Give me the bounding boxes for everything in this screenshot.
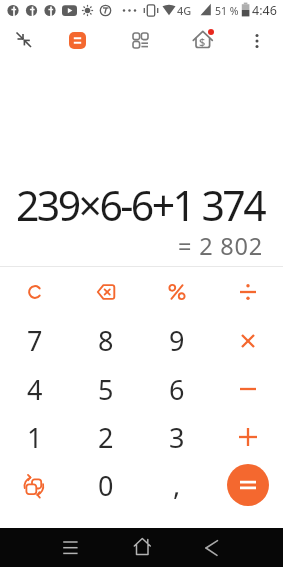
staticText: 6 <box>169 371 185 408</box>
staticText: 9 <box>169 322 185 359</box>
button[interactable] <box>0 267 70 316</box>
staticText: 51 % <box>215 4 239 18</box>
staticText: 2 <box>98 419 114 456</box>
button[interactable]: 5 <box>70 365 141 413</box>
button[interactable] <box>0 461 70 509</box>
button[interactable] <box>212 461 283 509</box>
button[interactable] <box>69 32 86 49</box>
staticText: 3 <box>169 419 185 456</box>
staticText: 1 <box>27 419 43 456</box>
button[interactable] <box>227 464 269 506</box>
staticText: 4:46 <box>252 2 277 19</box>
button[interactable]: 4 <box>0 365 70 413</box>
staticText: 239×6-6+1 374 <box>16 177 265 233</box>
button[interactable] <box>197 532 227 562</box>
button[interactable] <box>212 267 283 316</box>
button[interactable] <box>212 413 283 461</box>
button[interactable] <box>127 532 157 562</box>
button[interactable]: 9 <box>141 316 212 365</box>
staticText: 0 <box>98 467 114 504</box>
staticText: 4G <box>177 3 192 18</box>
staticText: 7 <box>27 322 43 359</box>
button[interactable] <box>56 532 86 562</box>
staticText: 8 <box>98 322 114 359</box>
staticText: 4 <box>27 371 43 408</box>
staticText: 5 <box>98 371 114 408</box>
button[interactable]: 3 <box>141 413 212 461</box>
button[interactable]: 0 <box>70 461 141 509</box>
button[interactable] <box>212 365 283 413</box>
button[interactable] <box>141 267 212 316</box>
button[interactable]: 1 <box>0 413 70 461</box>
staticText: $ <box>199 34 206 49</box>
staticText: = 2 802 <box>178 230 264 262</box>
button[interactable]: 8 <box>70 316 141 365</box>
button[interactable] <box>70 267 141 316</box>
button[interactable] <box>124 24 157 57</box>
button[interactable] <box>7 22 41 56</box>
button[interactable] <box>243 24 271 52</box>
button[interactable]: $ <box>186 24 219 57</box>
button[interactable]: 6 <box>141 365 212 413</box>
button[interactable]: 2 <box>70 413 141 461</box>
button[interactable]: , <box>141 461 212 509</box>
button[interactable] <box>212 316 283 365</box>
button[interactable]: 7 <box>0 316 70 365</box>
staticText: , <box>173 466 181 503</box>
